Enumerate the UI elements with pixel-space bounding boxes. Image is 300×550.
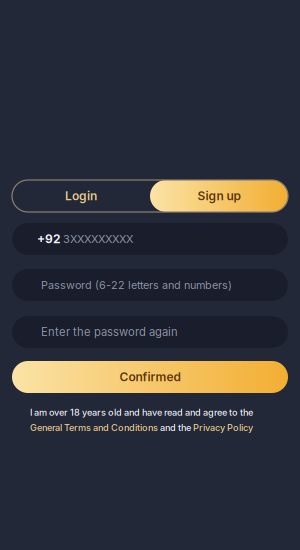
staticText: +92 xyxy=(37,232,61,246)
staticText: General Terms and Conditions xyxy=(30,422,158,433)
staticText: Password (6-22 letters and numbers) xyxy=(41,278,232,292)
staticText: Login xyxy=(65,189,97,203)
staticText: I am over 18 years old and have read and… xyxy=(30,407,253,418)
staticText: Enter the password again xyxy=(41,325,178,339)
staticText: 3XXXXXXXXX xyxy=(63,232,133,246)
staticText: Sign up xyxy=(197,189,240,203)
button[interactable]: Confirmed xyxy=(12,361,288,393)
button[interactable]: Privacy Policy xyxy=(193,422,253,433)
staticText: Privacy Policy xyxy=(193,422,253,433)
button[interactable]: Sign up xyxy=(150,180,288,212)
staticText: Confirmed xyxy=(119,370,180,384)
button[interactable]: Login xyxy=(12,180,150,212)
staticText: and the xyxy=(158,422,193,433)
button[interactable]: General Terms and Conditions xyxy=(30,422,158,433)
